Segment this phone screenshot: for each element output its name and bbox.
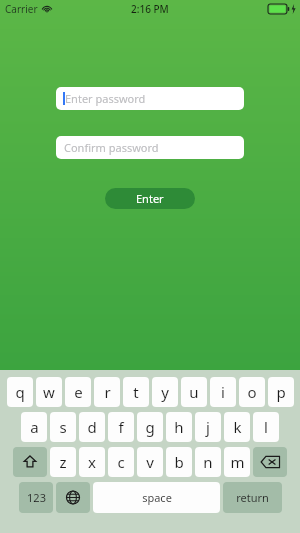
staticText: r: [104, 382, 111, 402]
button[interactable]: y: [152, 377, 178, 407]
button[interactable]: q: [7, 377, 33, 407]
staticText: q: [15, 382, 25, 402]
button[interactable]: c: [108, 447, 134, 477]
staticText: f: [118, 417, 124, 437]
staticText: space: [142, 490, 172, 505]
button[interactable]: s: [50, 412, 76, 442]
button[interactable]: h: [166, 412, 192, 442]
staticText: i: [221, 382, 225, 402]
button[interactable]: Change keyboard: [56, 482, 90, 513]
button[interactable]: d: [79, 412, 105, 442]
button[interactable]: o: [239, 377, 265, 407]
button[interactable]: w: [36, 377, 62, 407]
button[interactable]: Confirm password: [56, 136, 244, 159]
staticText: Carrier: [5, 2, 38, 16]
staticText: w: [43, 382, 55, 402]
staticText: u: [189, 382, 199, 402]
button[interactable]: space: [93, 482, 220, 513]
button[interactable]: r: [94, 377, 120, 407]
staticText: y: [161, 382, 169, 402]
button[interactable]: a: [21, 412, 47, 442]
staticText: Enter password: [65, 91, 146, 106]
button[interactable]: Shift: [13, 447, 47, 477]
button[interactable]: n: [195, 447, 221, 477]
button[interactable]: b: [166, 447, 192, 477]
staticText: p: [276, 382, 286, 402]
staticText: 123: [27, 490, 46, 505]
staticText: return: [236, 490, 269, 505]
staticText: Enter: [136, 191, 164, 206]
button[interactable]: p: [268, 377, 294, 407]
button[interactable]: j: [195, 412, 221, 442]
button[interactable]: 123: [19, 482, 53, 513]
staticText: s: [59, 417, 67, 437]
staticText: x: [88, 452, 96, 472]
staticText: c: [117, 452, 125, 472]
button[interactable]: t: [123, 377, 149, 407]
button[interactable]: i: [210, 377, 236, 407]
staticText: e: [74, 382, 83, 402]
button[interactable]: return: [223, 482, 282, 513]
button[interactable]: e: [65, 377, 91, 407]
button[interactable]: Enter: [105, 188, 195, 209]
staticText: b: [174, 452, 184, 472]
staticText: l: [264, 417, 268, 437]
button[interactable]: Enter password: [56, 87, 244, 110]
button[interactable]: Backspace: [253, 447, 287, 477]
button[interactable]: l: [253, 412, 279, 442]
staticText: d: [87, 417, 97, 437]
button[interactable]: m: [224, 447, 250, 477]
staticText: k: [233, 417, 242, 437]
staticText: Confirm password: [64, 140, 159, 155]
button[interactable]: u: [181, 377, 207, 407]
staticText: t: [133, 382, 139, 402]
staticText: z: [59, 452, 67, 472]
staticText: g: [145, 417, 155, 437]
staticText: j: [206, 417, 210, 437]
button[interactable]: g: [137, 412, 163, 442]
staticText: 2:16 PM: [131, 2, 169, 16]
staticText: v: [146, 452, 154, 472]
button[interactable]: z: [50, 447, 76, 477]
staticText: o: [247, 382, 257, 402]
button[interactable]: f: [108, 412, 134, 442]
staticText: a: [30, 417, 39, 437]
staticText: h: [174, 417, 184, 437]
staticText: n: [203, 452, 213, 472]
button[interactable]: k: [224, 412, 250, 442]
button[interactable]: v: [137, 447, 163, 477]
staticText: m: [230, 452, 245, 472]
button[interactable]: x: [79, 447, 105, 477]
